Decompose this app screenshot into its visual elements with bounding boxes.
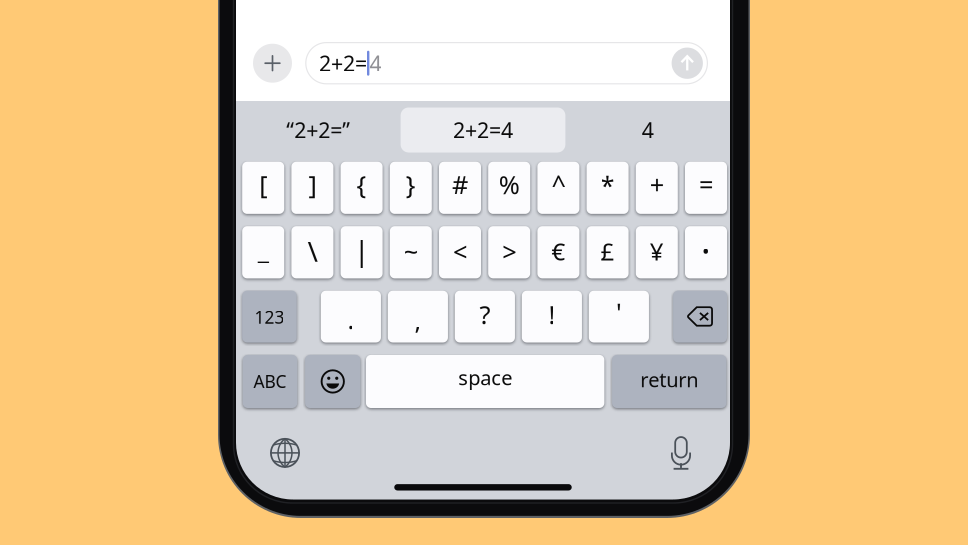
- button[interactable]: 123: [242, 291, 297, 342]
- staticText: ABC: [253, 370, 286, 393]
- button[interactable]: Send: [672, 48, 703, 79]
- button[interactable]: }: [390, 162, 432, 214]
- staticText: ~: [404, 234, 418, 268]
- staticText: return: [640, 366, 698, 393]
- staticText: .: [347, 302, 354, 336]
- button[interactable]: {: [341, 162, 383, 214]
- button[interactable]: |: [341, 226, 383, 278]
- button[interactable]: ABC: [243, 355, 297, 408]
- button[interactable]: ¥: [636, 226, 678, 278]
- staticText: £: [601, 235, 615, 267]
- staticText: \: [307, 232, 317, 270]
- button[interactable]: €: [537, 226, 579, 278]
- button[interactable]: ~: [390, 226, 432, 278]
- button[interactable]: ^: [537, 162, 579, 214]
- button[interactable]: #: [439, 162, 481, 214]
- button[interactable]: Emoji: [305, 355, 360, 408]
- button[interactable]: !: [522, 291, 582, 342]
- button[interactable]: ': [589, 291, 649, 342]
- staticText: }: [406, 168, 416, 201]
- button[interactable]: ]: [291, 162, 333, 214]
- staticText: *: [601, 168, 615, 202]
- button[interactable]: ?: [455, 291, 515, 342]
- staticText: ¥: [650, 235, 664, 267]
- button[interactable]: 2+2=4: [401, 107, 565, 152]
- button[interactable]: space: [366, 355, 604, 408]
- button[interactable]: _: [242, 226, 284, 278]
- staticText: ?: [479, 298, 490, 331]
- staticText: ]: [308, 168, 316, 201]
- button[interactable]: return: [612, 355, 726, 408]
- staticText: ^: [551, 167, 565, 201]
- button[interactable]: [: [242, 162, 284, 214]
- staticText: [: [259, 168, 267, 201]
- button[interactable]: =: [685, 162, 727, 214]
- staticText: |: [354, 232, 369, 269]
- staticText: 4: [642, 116, 654, 144]
- staticText: •: [702, 238, 710, 264]
- staticText: 4: [369, 49, 381, 77]
- button[interactable]: “2+2=”: [236, 107, 401, 152]
- button[interactable]: Dictation: [656, 422, 706, 484]
- button[interactable]: \: [291, 226, 333, 278]
- button[interactable]: Next keyboard: [260, 422, 310, 484]
- button[interactable]: £: [587, 226, 629, 278]
- button[interactable]: %: [488, 162, 530, 214]
- staticText: !: [548, 298, 555, 331]
- staticText: ,: [414, 303, 421, 337]
- staticText: +: [650, 168, 664, 201]
- button[interactable]: •: [685, 226, 727, 278]
- staticText: space: [458, 364, 512, 391]
- button[interactable]: +: [636, 162, 678, 214]
- button[interactable]: Add attachment: [253, 44, 292, 83]
- staticText: €: [551, 235, 565, 267]
- button[interactable]: >: [488, 226, 530, 278]
- staticText: >: [502, 235, 516, 268]
- staticText: %: [499, 168, 520, 201]
- button[interactable]: ,: [388, 291, 448, 342]
- staticText: 123: [254, 305, 284, 328]
- staticText: ': [616, 295, 622, 329]
- button[interactable]: *: [587, 162, 629, 214]
- button[interactable]: .: [321, 291, 381, 342]
- staticText: {: [357, 168, 367, 201]
- staticText: “2+2=”: [286, 116, 350, 144]
- button[interactable]: 4: [565, 107, 730, 152]
- staticText: <: [453, 235, 467, 268]
- button[interactable]: Delete: [673, 291, 727, 342]
- staticText: _: [258, 232, 269, 266]
- button[interactable]: <: [439, 226, 481, 278]
- staticText: 2+2=4: [453, 116, 513, 144]
- staticText: =: [699, 168, 713, 201]
- staticText: 2+2=: [319, 49, 367, 77]
- staticText: #: [452, 168, 468, 201]
